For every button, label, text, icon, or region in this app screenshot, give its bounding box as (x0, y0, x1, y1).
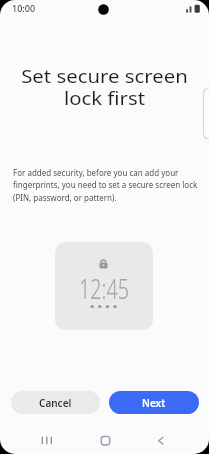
button[interactable]: Next (109, 391, 199, 414)
staticText: 10:00 (12, 2, 36, 14)
staticText: For added security, before you can add y… (13, 166, 198, 204)
staticText: Next (142, 396, 166, 410)
staticText: Cancel (39, 396, 72, 410)
staticText: 12:45 (68, 270, 140, 307)
staticText: Set secure screen lock first (0, 64, 209, 111)
button[interactable]: Cancel (11, 391, 100, 414)
